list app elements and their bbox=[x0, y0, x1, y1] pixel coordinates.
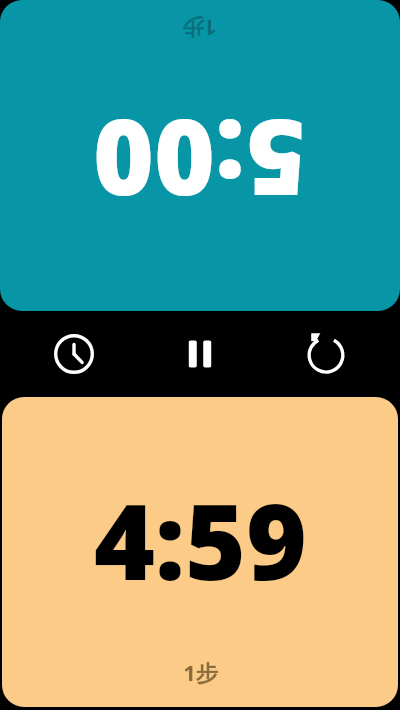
staticText: 4:59 bbox=[94, 469, 307, 611]
staticText: 1步 bbox=[183, 657, 218, 687]
button[interactable]: History bbox=[46, 326, 102, 382]
button[interactable]: 5:00 bbox=[0, 0, 400, 311]
button[interactable]: 4:59 bbox=[2, 397, 398, 707]
staticText: 5:00 bbox=[93, 89, 306, 231]
button[interactable]: Pause bbox=[172, 326, 228, 382]
staticText: 1步 bbox=[182, 14, 217, 44]
button[interactable]: Reset bbox=[298, 326, 354, 382]
